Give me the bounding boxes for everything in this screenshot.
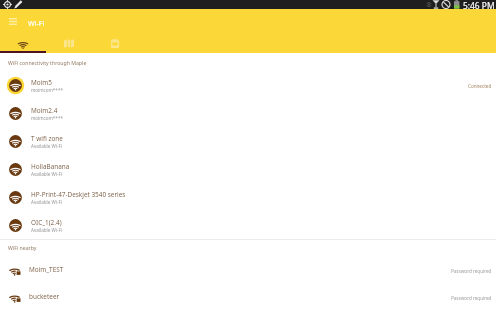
staticText: 5:46 PM [463,0,495,9]
staticText: Available Wi-Fi [31,227,63,233]
button[interactable]: HollaBanana [0,155,496,183]
staticText: Connected [468,83,492,89]
staticText: Available Wi-Fi [31,143,63,149]
staticText: HollaBanana [31,162,70,171]
staticText: T wifi zone [31,134,63,143]
button[interactable]: T wifi zone [0,127,496,155]
button[interactable]: Wi-Fi networks [0,30,46,53]
button[interactable]: OIC_1(2.4) [0,211,496,239]
button[interactable]: Moim_TEST [0,256,496,283]
staticText: bucketeer [29,292,60,301]
staticText: Moim2.4 [31,106,58,115]
button[interactable]: Store [92,30,138,53]
staticText: WiFi connectivity through Maple [8,59,87,66]
staticText: OIC_1(2.4) [31,218,62,227]
staticText: moimcom**** [31,87,63,93]
staticText: Available Wi-Fi [31,171,63,177]
button[interactable]: Map [46,30,92,53]
staticText: Password required [451,295,492,301]
button[interactable]: bucketeer [0,283,496,310]
button[interactable]: Moim5 [0,71,496,99]
staticText: moimcom**** [31,115,63,121]
staticText: Moim_TEST [29,265,64,274]
staticText: Wi-Fi [28,18,45,28]
button[interactable]: HP-Print-47-Deskjet 3540 series [0,183,496,211]
staticText: Available Wi-Fi [31,199,63,205]
staticText: Moim5 [31,78,52,87]
button[interactable]: Open navigation drawer [3,12,22,31]
staticText: Password required [451,268,492,274]
staticText: WiFi nearby [8,244,37,251]
button[interactable]: Moim2.4 [0,99,496,127]
staticText: HP-Print-47-Deskjet 3540 series [31,190,126,199]
